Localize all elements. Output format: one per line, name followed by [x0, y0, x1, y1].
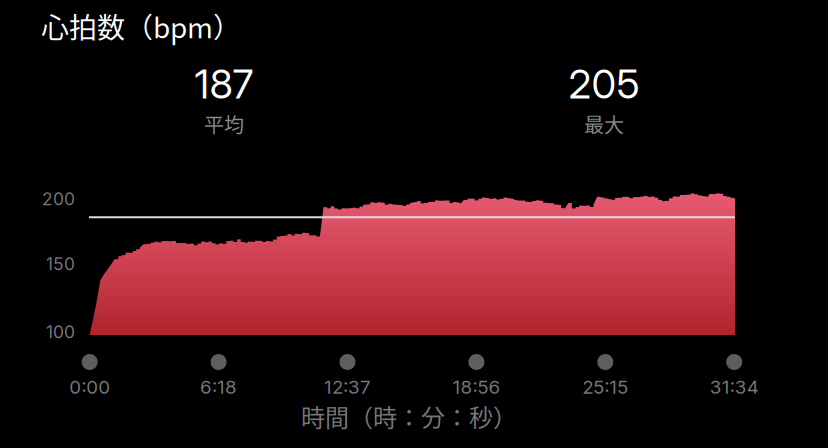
staticText: 平均 — [204, 109, 244, 138]
staticText: 187 — [194, 60, 253, 108]
staticText: 150 — [46, 253, 75, 274]
staticText: 200 — [42, 188, 75, 209]
staticText: 12:37 — [324, 376, 371, 398]
staticText: 31:34 — [710, 376, 759, 398]
staticText: 最大 — [584, 109, 624, 138]
staticText: 0:00 — [69, 376, 110, 398]
staticText: 6:18 — [200, 376, 237, 398]
staticText: 時間（時：分：秒） — [301, 399, 517, 433]
staticText: 18:56 — [452, 376, 500, 398]
staticText: 心拍数（bpm） — [41, 6, 241, 46]
staticText: 100 — [46, 321, 75, 342]
staticText: 205 — [568, 60, 639, 108]
staticText: 25:15 — [582, 376, 628, 398]
